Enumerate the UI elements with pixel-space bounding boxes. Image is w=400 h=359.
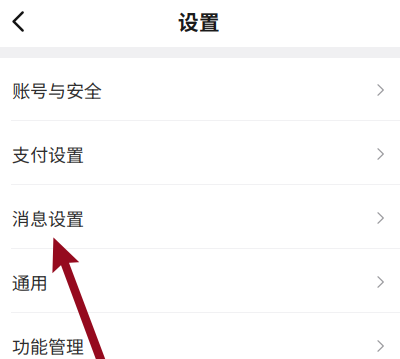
staticText: 功能管理 [12,333,84,359]
button[interactable]: Back [0,0,36,47]
button[interactable]: 消息设置 [0,186,400,250]
button[interactable]: 支付设置 [0,122,400,186]
staticText: 消息设置 [12,205,84,231]
button[interactable]: 通用 [0,250,400,314]
button[interactable]: 功能管理 [0,314,400,359]
button[interactable]: 账号与安全 [0,58,400,122]
staticText: 设置 [178,6,220,36]
staticText: 支付设置 [12,141,84,167]
staticText: 账号与安全 [12,77,102,103]
staticText: 通用 [12,269,48,295]
